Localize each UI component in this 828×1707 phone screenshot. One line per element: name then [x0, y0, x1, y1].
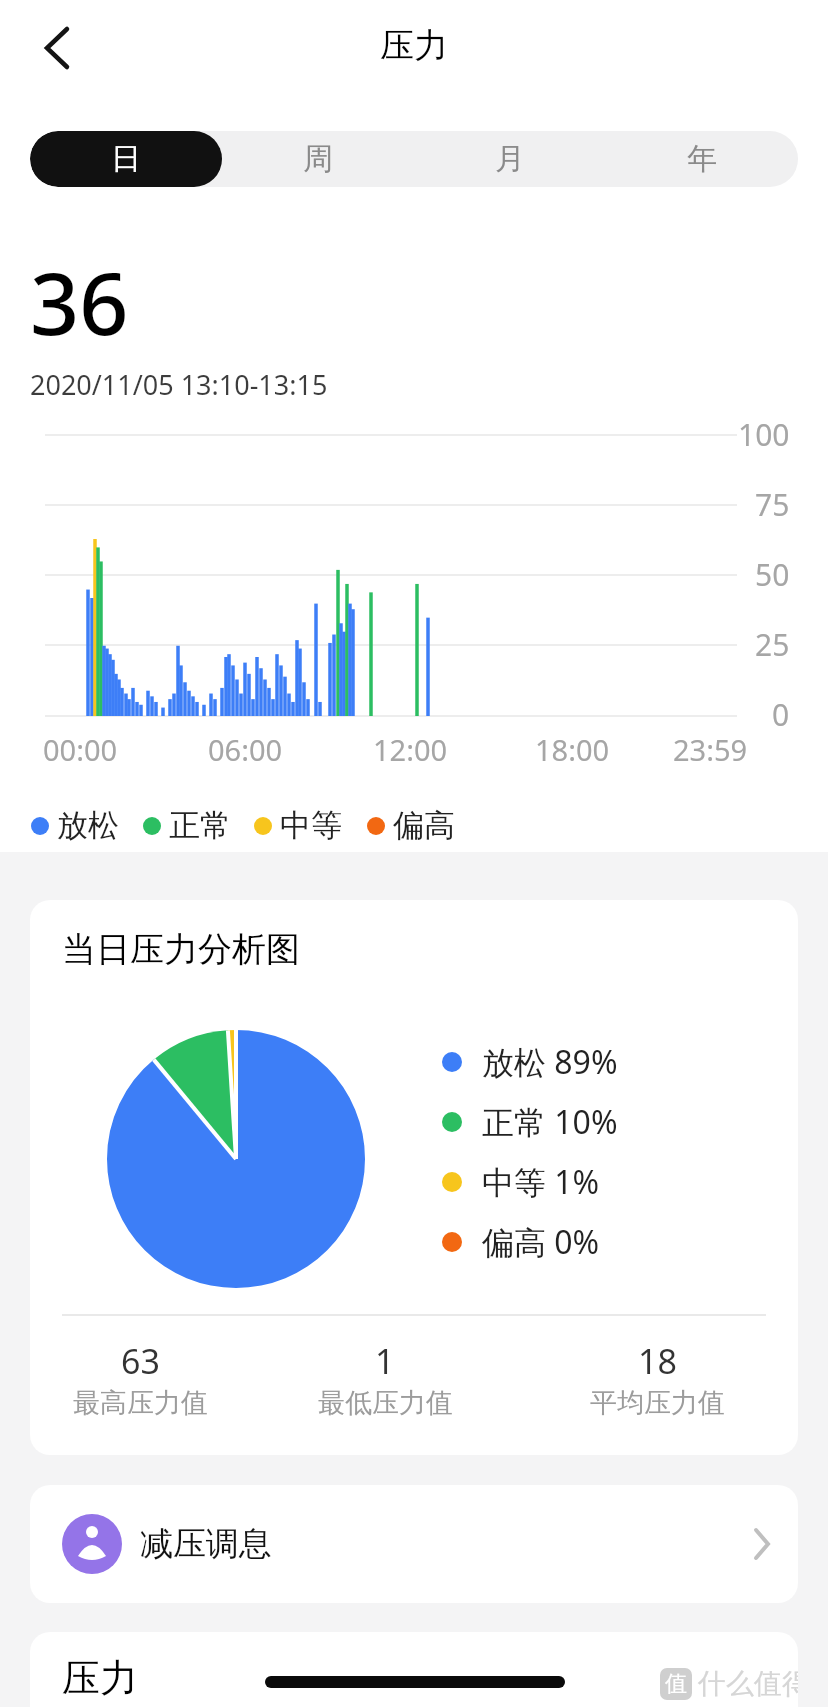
staticText: 12:00 — [373, 730, 448, 769]
staticText: 75 — [755, 484, 790, 525]
staticText: 周 — [303, 140, 333, 178]
staticText: 06:00 — [208, 730, 283, 769]
staticText: 18:00 — [535, 730, 610, 769]
staticText: 正常 — [169, 806, 231, 845]
staticText: 最高压力值 — [73, 1386, 208, 1420]
button[interactable]: 周 — [222, 131, 414, 187]
staticText: 月 — [495, 140, 525, 178]
staticText: 中等 — [280, 806, 342, 845]
staticText: 压力 — [62, 1654, 138, 1702]
staticText: 平均压力值 — [590, 1386, 725, 1420]
button[interactable]: 减压调息 — [30, 1485, 798, 1603]
staticText: 1 — [375, 1338, 395, 1384]
staticText: 18 — [638, 1338, 677, 1384]
button[interactable]: 日 — [30, 131, 222, 187]
staticText: 什么值得买 — [698, 1666, 798, 1701]
staticText: 100 — [738, 414, 790, 455]
staticText: 中等 1% — [482, 1160, 600, 1204]
staticText: 压力 — [380, 24, 448, 67]
staticText: 36 — [30, 243, 129, 360]
staticText: 日 — [111, 140, 141, 178]
button[interactable]: 年 — [606, 131, 798, 187]
staticText: 放松 89% — [482, 1040, 618, 1084]
staticText: 偏高 — [393, 806, 455, 845]
staticText: 00:00 — [43, 730, 118, 769]
staticText: 2020/11/05 13:10-13:15 — [30, 366, 328, 403]
staticText: 偏高 0% — [482, 1220, 600, 1264]
button[interactable]: 月 — [414, 131, 606, 187]
staticText: 最低压力值 — [318, 1386, 453, 1420]
staticText: 0 — [772, 694, 790, 735]
staticText: 值 — [665, 1670, 687, 1698]
staticText: 正常 10% — [482, 1100, 618, 1144]
staticText: 放松 — [57, 806, 119, 845]
staticText: 25 — [755, 624, 790, 665]
staticText: 减压调息 — [140, 1523, 272, 1565]
staticText: 当日压力分析图 — [62, 928, 300, 971]
staticText: 23:59 — [673, 730, 748, 769]
staticText: 63 — [121, 1338, 160, 1384]
button[interactable] — [34, 26, 78, 70]
staticText: 50 — [755, 554, 790, 595]
staticText: 年 — [687, 140, 717, 178]
